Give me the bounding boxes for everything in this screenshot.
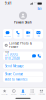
- staticText: mail: [37, 35, 39, 37]
- staticText: Contact Photo & Poster: [9, 42, 32, 49]
- button[interactable]: Call: [37, 54, 41, 58]
- button[interactable]: Message: [32, 54, 36, 58]
- staticText: Send Message: [5, 64, 24, 68]
- staticText: Pawan Shah: [14, 21, 32, 24]
- staticText: Edit: [37, 7, 42, 11]
- staticText: Keypad: [29, 93, 35, 95]
- button[interactable]: Send Message: [3, 63, 43, 69]
- button[interactable]: mail: [34, 29, 43, 39]
- staticText: Add to Favorites: [5, 78, 27, 81]
- button[interactable]: Share Contact: [3, 71, 43, 77]
- button[interactable]: Edit: [37, 7, 43, 11]
- staticText: +1 (555) 010-2048: [5, 53, 20, 60]
- button[interactable]: Voicemail: [37, 88, 46, 96]
- staticText: video: [26, 35, 30, 37]
- button[interactable]: video: [24, 29, 33, 39]
- staticText: mobile: [5, 51, 9, 53]
- button[interactable]: Keypad: [28, 88, 37, 96]
- button[interactable]: mobile: [5, 52, 20, 60]
- button[interactable]: Add to Favorites: [3, 77, 43, 82]
- staticText: call: [17, 35, 19, 37]
- staticText: Favorites: [1, 93, 8, 95]
- staticText: Recents: [11, 93, 17, 95]
- staticText: Share Contact: [5, 72, 23, 76]
- button[interactable]: Contacts: [18, 88, 28, 96]
- staticText: 9:41: [5, 2, 12, 5]
- button[interactable]: call: [13, 29, 22, 39]
- staticText: message: [4, 35, 11, 37]
- button[interactable]: Contact Photo & Poster: [3, 41, 43, 49]
- button[interactable]: Favorites: [0, 88, 9, 96]
- button[interactable]: Recents: [9, 88, 18, 96]
- staticText: Voicemail: [38, 93, 44, 95]
- button[interactable]: message: [3, 29, 12, 39]
- staticText: Contacts: [20, 93, 26, 95]
